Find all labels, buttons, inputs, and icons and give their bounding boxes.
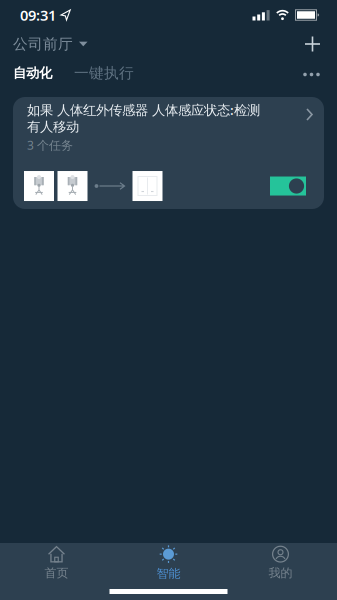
button[interactable]: 智能: [112, 546, 224, 580]
staticText: 自动化: [13, 65, 52, 81]
staticText: 智能: [156, 566, 180, 581]
button[interactable]: 首页: [0, 546, 112, 580]
button[interactable]: More: [299, 65, 324, 80]
staticText: 09:31: [20, 5, 56, 25]
staticText: 3 个任务: [27, 137, 73, 153]
staticText: 我的: [268, 566, 292, 580]
button[interactable]: 如果 人体红外传感器 人体感应状态:检测 有人移动: [13, 97, 324, 209]
button[interactable]: 一键执行: [74, 64, 134, 82]
button[interactable]: 公司前厅: [13, 35, 87, 53]
staticText: 公司前厅: [13, 35, 73, 53]
staticText: 首页: [44, 566, 68, 580]
staticText: 如果 人体红外传感器 人体感应状态:检测 有人移动: [27, 101, 260, 135]
staticText: 一键执行: [74, 64, 134, 82]
button[interactable]: 我的: [224, 546, 336, 580]
button[interactable]: 自动化: [13, 65, 52, 81]
button[interactable]: Add: [301, 32, 324, 55]
button[interactable]: Toggle automation: [270, 176, 306, 195]
